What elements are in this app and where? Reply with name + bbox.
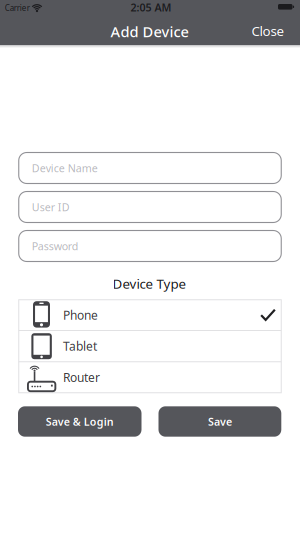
button[interactable]: Phone (19, 300, 281, 330)
button[interactable]: Password (19, 230, 281, 261)
button[interactable]: Router (19, 362, 281, 392)
staticText: Tablet (63, 338, 97, 354)
staticText: Add Device (110, 22, 188, 41)
button[interactable]: Tablet (19, 331, 281, 361)
staticText: Close (251, 22, 284, 40)
staticText: Phone (63, 307, 98, 323)
staticText: 2:05 AM (130, 0, 171, 14)
button[interactable]: Device Name (19, 152, 281, 183)
staticText: Device Name (32, 161, 98, 175)
staticText: Device Type (112, 275, 186, 292)
staticText: User ID (32, 200, 70, 214)
staticText: Save & Login (46, 414, 114, 429)
staticText: Carrier (5, 3, 30, 13)
staticText: Router (63, 369, 100, 385)
staticText: Password (32, 239, 79, 253)
staticText: Save (208, 414, 232, 429)
button[interactable]: Close (251, 22, 284, 40)
button[interactable]: Save (158, 406, 281, 437)
button[interactable]: User ID (19, 191, 281, 222)
button[interactable]: Save & Login (18, 406, 141, 437)
